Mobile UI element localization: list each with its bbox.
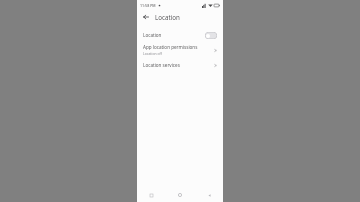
button[interactable]: App location permissions [137,42,223,58]
button[interactable]: Location services [137,58,223,72]
button[interactable]: Back [141,12,151,22]
staticText: 11:58 PM [140,3,156,8]
staticText: Location [155,13,180,21]
button[interactable]: Location [137,28,223,42]
staticText: Location off [143,51,162,56]
button[interactable]: Home [175,190,185,200]
button[interactable]: Recents [146,190,156,200]
staticText: Location [143,32,162,38]
button[interactable]: Location toggle [205,32,217,39]
staticText: App location permissions [143,44,198,50]
button[interactable]: Back [204,190,214,200]
staticText: Location services [143,62,180,68]
